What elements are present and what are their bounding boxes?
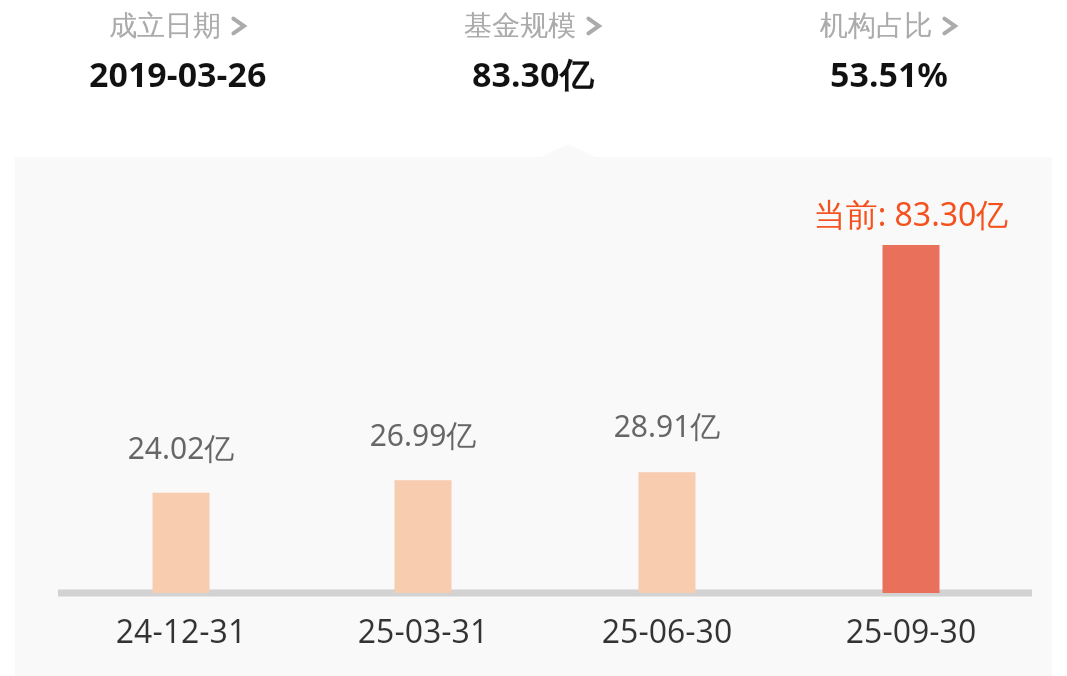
staticText: 机构占比 (820, 8, 932, 43)
staticText: 基金规模 (464, 8, 576, 43)
button[interactable]: 基金规模 (355, 0, 711, 97)
other: More 成立日期 (230, 13, 247, 39)
other: More 机构占比 (941, 13, 958, 39)
button[interactable]: 25-09-30 (781, 609, 1041, 653)
staticText: 28.91亿 (547, 405, 787, 446)
staticText: 成立日期 (109, 8, 221, 43)
staticText: 83.30亿 (472, 51, 594, 97)
button[interactable]: 24.02亿 (0, 144, 1067, 676)
staticText: 25-06-30 (537, 609, 797, 653)
staticText: 24.02亿 (61, 427, 301, 468)
button[interactable]: 25-06-30 (537, 609, 797, 653)
staticText: 2019-03-26 (89, 51, 267, 97)
button[interactable]: 成立日期 (0, 0, 355, 97)
button[interactable]: 24-12-31 (51, 609, 311, 653)
staticText: 24-12-31 (51, 609, 311, 653)
staticText: 26.99亿 (303, 414, 543, 455)
other: More 基金规模 (585, 13, 602, 39)
staticText: 25-09-30 (781, 609, 1041, 653)
staticText: 25-03-31 (293, 609, 553, 653)
button[interactable]: 25-03-31 (293, 609, 553, 653)
staticText: 当前: 83.30亿 (731, 192, 1067, 236)
staticText: 53.51% (830, 51, 949, 97)
button[interactable]: 机构占比 (711, 0, 1067, 97)
